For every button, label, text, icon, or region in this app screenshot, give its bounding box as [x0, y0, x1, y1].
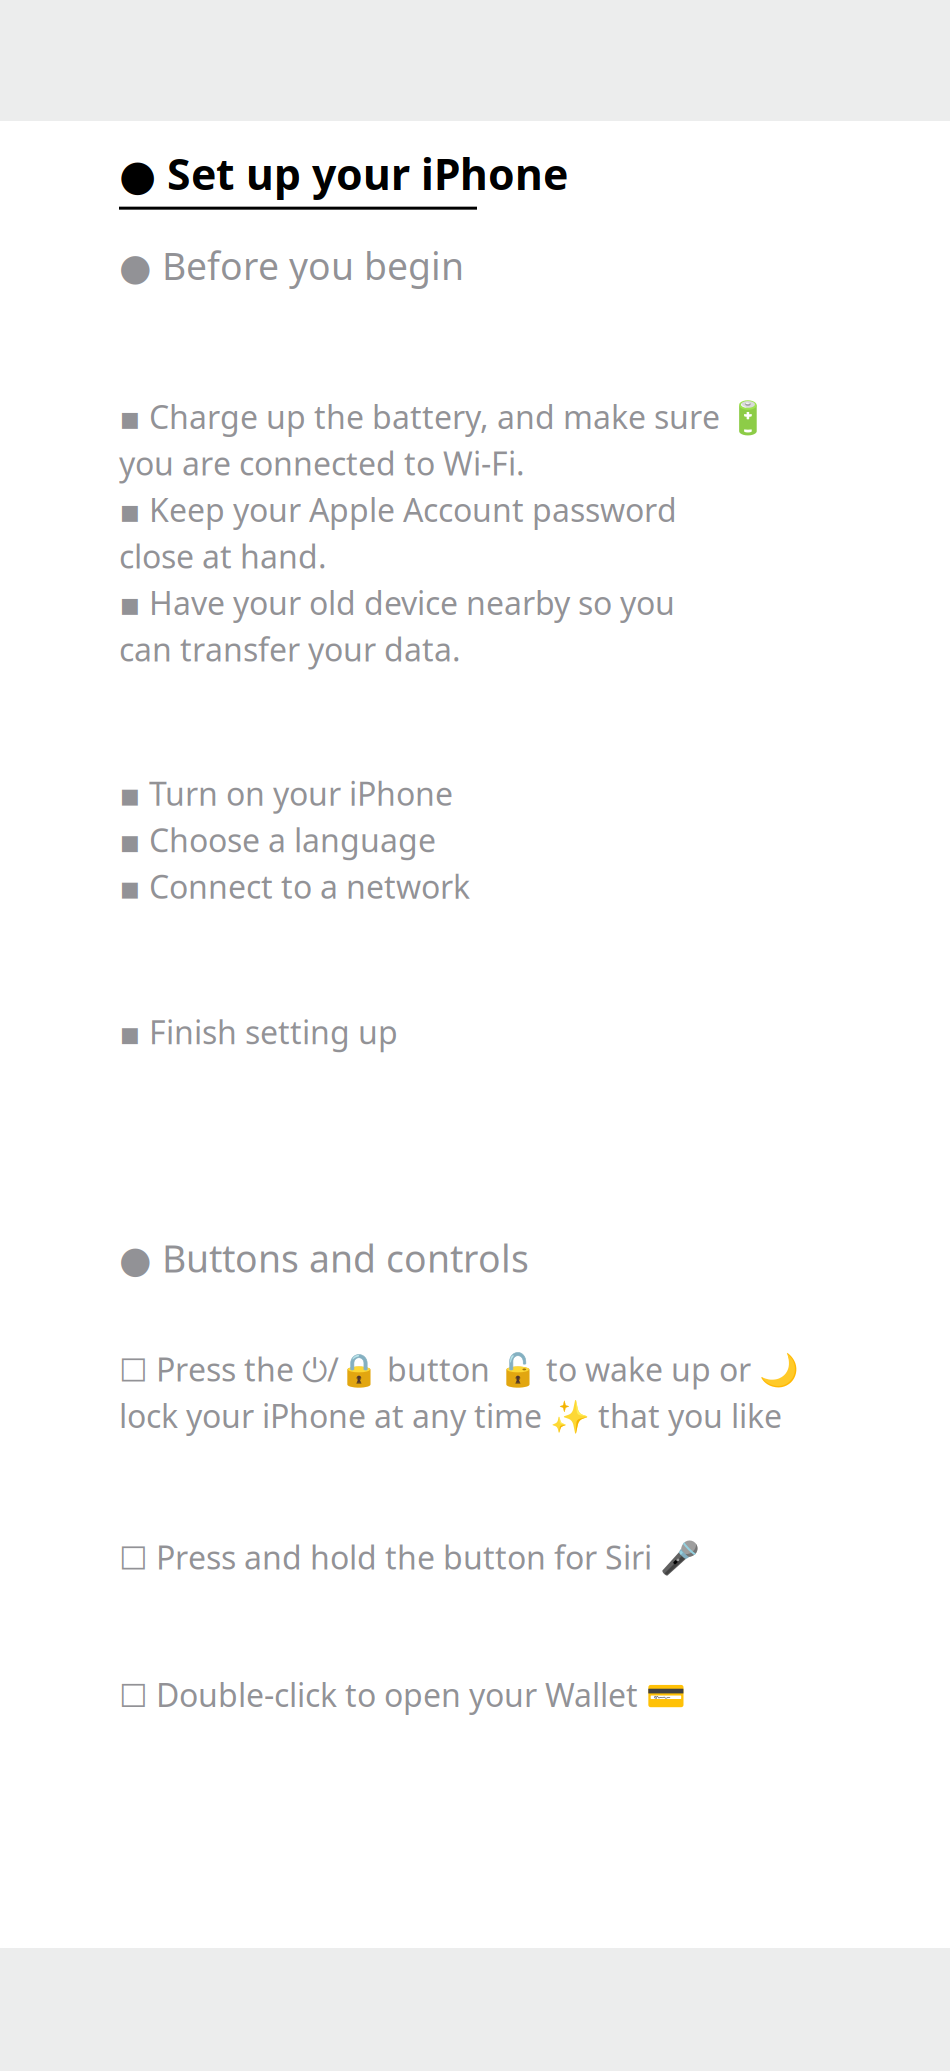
staticText: ● Buttons and controls [119, 1233, 529, 1283]
button[interactable]: ☐ Press the ⏻/🔒 button 🔓 to wake up or 🌙… [119, 1348, 799, 1437]
staticText: ▪ Charge up the battery, and make sure 🔋… [119, 395, 768, 670]
staticText: ▪ Finish setting up [119, 1011, 398, 1053]
staticText: ☐ Press the ⏻/🔒 button 🔓 to wake up or 🌙… [119, 1348, 799, 1437]
staticText: ● Before you begin [119, 241, 464, 290]
button[interactable]: ☐ Double-click to open your Wallet 💳 [119, 1673, 686, 1716]
staticText: ● Set up your iPhone [119, 145, 568, 202]
staticText: ☐ Double-click to open your Wallet 💳 [119, 1673, 686, 1716]
staticText: ☐ Press and hold the button for Siri 🎤 [119, 1536, 700, 1578]
staticText: ▪ Turn on your iPhone ▪ Choose a languag… [119, 772, 470, 908]
button[interactable]: ☐ Press and hold the button for Siri 🎤 [119, 1536, 700, 1578]
